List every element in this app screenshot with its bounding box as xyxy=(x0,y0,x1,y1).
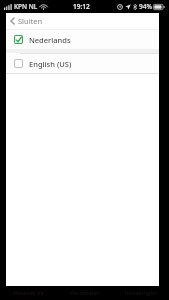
button[interactable]: English (US) xyxy=(6,54,159,73)
other: Sluiten xyxy=(10,17,15,25)
button[interactable]: Sluiten xyxy=(6,14,51,28)
button[interactable]: Nederlands xyxy=(6,30,159,49)
staticText: 94% xyxy=(139,2,152,11)
staticText: Sluiten xyxy=(18,16,43,26)
button[interactable]: Postvak IN xyxy=(0,286,57,300)
staticText: Instellingen xyxy=(124,289,158,297)
button[interactable]: Verzonden xyxy=(57,286,113,300)
staticText: Nederlands xyxy=(29,35,71,45)
staticText: Verzonden xyxy=(70,289,101,297)
button[interactable]: Instellingen xyxy=(113,286,169,300)
staticText: Postvak IN xyxy=(13,289,44,297)
staticText: KPN NL xyxy=(14,2,38,11)
staticText: English (US) xyxy=(29,59,72,69)
staticText: 19:12 xyxy=(73,2,90,11)
